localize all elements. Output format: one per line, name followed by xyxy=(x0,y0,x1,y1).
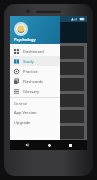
button[interactable]: Practice xyxy=(10,66,60,76)
staticText: Practice xyxy=(23,69,38,74)
button[interactable]: Back xyxy=(22,140,32,150)
staticText: App Version xyxy=(14,110,37,115)
button[interactable]: Upgrade xyxy=(10,117,60,127)
button[interactable]: Glossary xyxy=(10,86,60,96)
button[interactable]: Study xyxy=(10,56,60,66)
button[interactable]: Home xyxy=(44,140,54,150)
staticText: Psychology xyxy=(14,37,36,42)
staticText: Study xyxy=(23,59,34,64)
staticText: Dashboard xyxy=(23,49,44,54)
staticText: Glossary xyxy=(23,89,40,94)
button[interactable]: Dashboard xyxy=(10,46,60,56)
staticText: Flashcards xyxy=(23,79,43,84)
button[interactable]: Recents xyxy=(65,140,75,150)
button[interactable]: Psychology xyxy=(10,16,60,44)
staticText: General xyxy=(14,101,28,106)
staticText: Upgrade xyxy=(14,120,31,125)
button[interactable]: App Version xyxy=(10,107,60,117)
button[interactable]: Flashcards xyxy=(10,76,60,86)
